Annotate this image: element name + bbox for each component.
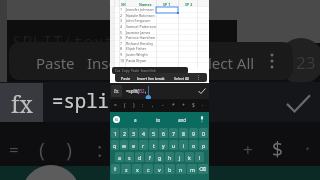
button[interactable]: n [176,164,186,174]
staticText: - [162,102,164,109]
button[interactable]: 6 [159,128,168,138]
button[interactable]: x [132,164,142,174]
button[interactable]: : [138,99,148,112]
staticText: SN [121,2,126,7]
staticText: 7 [172,130,175,137]
button[interactable]: p [199,140,208,150]
button[interactable]: 9 [189,128,198,138]
button[interactable]: Google [113,116,120,123]
button[interactable]: h [165,152,174,162]
staticText: SP 1 [163,2,171,7]
staticText: , [152,102,154,109]
button[interactable]: 8 [179,128,188,138]
staticText: Names [139,2,152,7]
button[interactable]: 1 [111,128,119,138]
button[interactable]: v [154,164,164,174]
button[interactable]: a [115,152,124,162]
staticText: ⌫ [199,166,207,172]
button[interactable]: r [139,140,148,150]
button[interactable]: c [143,164,153,174]
staticText: k [188,154,191,161]
button[interactable]: Cut Copy Paste Insert link [112,67,188,74]
button[interactable]: ⌫ [198,164,208,174]
button[interactable]: u [169,140,178,150]
button[interactable]: w [120,140,128,150]
staticText: ⇧ [113,166,118,172]
button[interactable]: - [158,99,168,112]
staticText: 1 [114,130,117,137]
button[interactable]: + [178,99,188,112]
staticText: Justin Wright [126,52,148,57]
staticText: : [97,136,103,163]
button[interactable]: ) [129,99,138,112]
button[interactable] [9,42,293,80]
button[interactable]: · [198,99,208,112]
button[interactable]: = [111,99,120,112]
button[interactable]: z [121,164,131,174]
button[interactable]: fx [111,85,122,97]
staticText: q [113,142,117,149]
button[interactable]: d [135,152,144,162]
button[interactable]: 5 [149,128,158,138]
staticText: Inse [87,53,118,73]
staticText: i [183,142,185,149]
staticText: + [243,138,253,161]
button[interactable]: 3 [129,128,138,138]
button[interactable]: o [189,140,198,150]
button[interactable]: q [111,140,119,150]
staticText: , [145,88,147,94]
button[interactable]: m [187,164,197,174]
button[interactable]: 0 [199,128,208,138]
staticText: · [202,102,204,109]
staticText: =split( [126,88,139,94]
staticText: 4 [142,130,145,137]
button[interactable]: e [129,140,138,150]
staticText: Insert line break [137,76,165,81]
staticText: 8 [120,46,123,51]
button[interactable]: ⇧ [111,164,120,174]
staticText: Richard Hensley [126,41,154,46]
staticText: Select All [174,76,190,81]
staticText: 5 [120,30,123,35]
staticText: 3 [132,130,135,137]
staticText: 1 [120,7,123,12]
staticText: 23 [296,51,316,74]
button[interactable]: 7 [169,128,178,138]
staticText: ( [124,102,126,109]
other: More options [197,75,200,80]
button[interactable]: l [195,152,204,162]
staticText: 0 [202,130,205,137]
button[interactable]: ( [120,99,129,112]
button[interactable]: 2 [120,128,128,138]
staticText: and [178,117,187,123]
staticText: B2 [139,88,145,94]
staticText: to [156,117,161,123]
button[interactable]: b [165,164,175,174]
button[interactable]: k [185,152,194,162]
button[interactable]: * [168,99,178,112]
button[interactable]: Paste [115,73,207,82]
staticText: Natalie Robinson [126,13,155,18]
staticText: = [114,102,117,109]
button[interactable]: j [175,152,184,162]
button[interactable]: f [145,152,154,162]
staticText: t [153,142,155,149]
other: Voice input [199,116,205,123]
button[interactable]: s [125,152,134,162]
staticText: lect All [208,53,255,73]
button[interactable]: , [148,99,158,112]
button[interactable]: g [155,152,164,162]
button[interactable]: y [159,140,168,150]
staticText: o [192,142,196,149]
button[interactable]: i [179,140,188,150]
staticText: 7 [120,41,123,46]
staticText: v [158,166,161,173]
staticText: 2 [120,13,123,18]
other: Accept formula [286,94,311,113]
staticText: Samuel Patterson [126,24,156,29]
staticText: ) [66,136,72,163]
staticText: 9 [192,130,195,137]
button[interactable]: t [149,140,158,150]
button[interactable]: 4 [139,128,148,138]
button[interactable]: $ [188,99,198,112]
